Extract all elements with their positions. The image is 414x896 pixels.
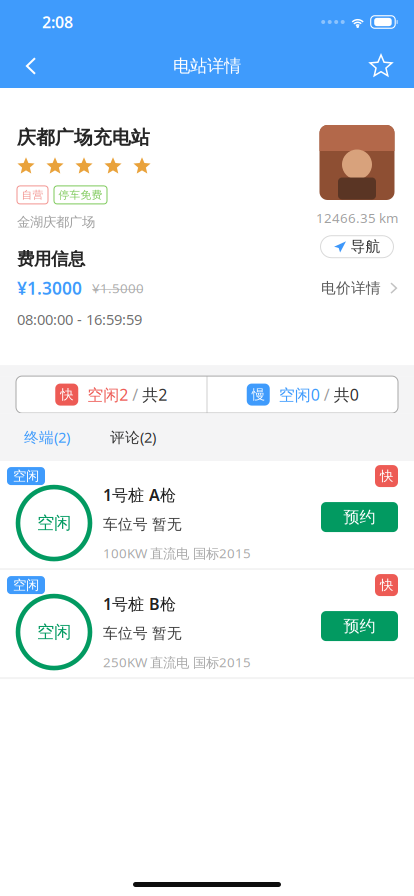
staticText: 慢	[252, 386, 265, 403]
staticText: ¥1.3000	[17, 277, 82, 300]
staticText: 100KW 直流电 国标2015	[103, 544, 251, 562]
staticText: 导航	[350, 238, 380, 256]
button[interactable]: 预约	[321, 502, 398, 532]
staticText: 自营	[21, 188, 43, 201]
staticText: 金湖庆都广场	[17, 214, 95, 230]
staticText: 庆都广场充电站	[17, 126, 150, 149]
staticText: 共0	[334, 384, 359, 405]
staticText: 共2	[142, 384, 167, 405]
staticText: 电价详情	[321, 279, 381, 297]
staticText: 2:08	[42, 11, 73, 33]
staticText: 快	[380, 468, 393, 484]
staticText: 1号桩 B枪	[103, 593, 176, 614]
staticText: 空闲0	[279, 384, 320, 405]
staticText: 250KW 直流电 国标2015	[103, 653, 251, 671]
staticText: ¥1.5000	[92, 279, 144, 297]
button[interactable]: Favorite	[359, 44, 403, 88]
staticText: 空闲2	[87, 384, 128, 405]
staticText: 空闲	[37, 621, 71, 643]
staticText: 08:00:00 - 16:59:59	[17, 310, 142, 329]
staticText: /	[320, 384, 334, 405]
staticText: 车位号 暂无	[103, 624, 182, 642]
button[interactable]: 快	[16, 376, 206, 413]
staticText: 评论(2)	[110, 427, 156, 447]
staticText: 停车免费	[58, 188, 102, 201]
button[interactable]: 导航	[320, 236, 393, 258]
staticText: 空闲	[13, 468, 39, 484]
staticText: 终端(2)	[24, 427, 70, 447]
staticText: 车位号 暂无	[103, 515, 182, 533]
staticText: /	[128, 384, 142, 405]
staticText: 快	[60, 386, 73, 403]
staticText: 电站详情	[173, 55, 241, 77]
staticText: 1号桩 A枪	[103, 484, 176, 505]
button[interactable]: 终端(2)	[4, 422, 90, 452]
button[interactable]: 评论(2)	[90, 422, 176, 452]
button[interactable]: 电价详情	[321, 279, 398, 297]
staticText: 预约	[343, 507, 375, 527]
staticText: 空闲	[13, 577, 39, 593]
staticText: 12466.35 km	[316, 209, 398, 227]
staticText: 费用信息	[17, 248, 85, 270]
button[interactable]: Back	[9, 44, 53, 88]
staticText: 快	[380, 577, 393, 593]
staticText: 空闲	[37, 512, 71, 534]
button[interactable]: 慢	[207, 376, 398, 413]
button[interactable]: 预约	[321, 611, 398, 641]
staticText: 预约	[343, 616, 375, 636]
